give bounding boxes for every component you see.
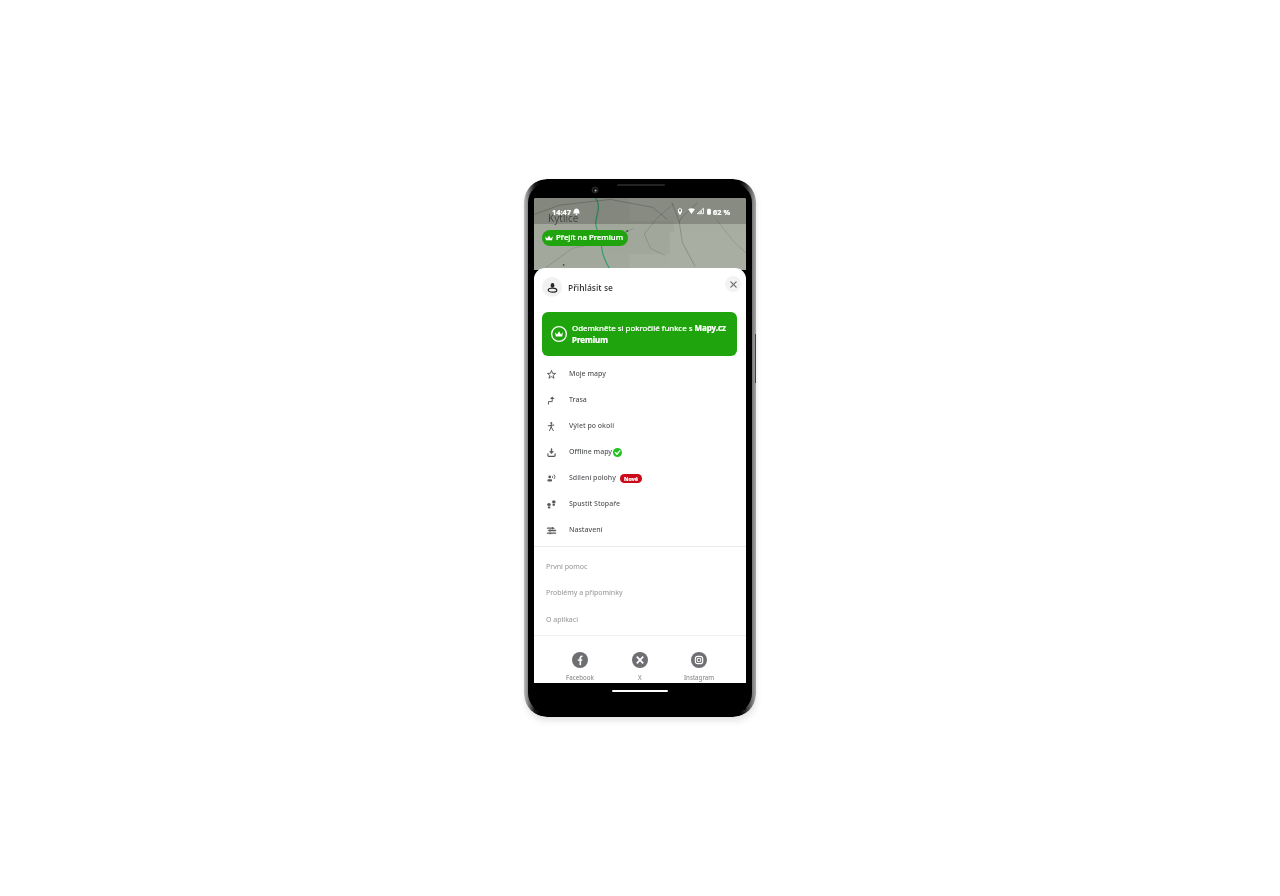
staticText: X <box>638 673 642 681</box>
button[interactable]: Přejít na Premium <box>542 230 628 246</box>
staticText: Přejít na Premium <box>556 232 624 243</box>
staticText: Facebook <box>566 673 594 681</box>
button[interactable]: Výlet po okolí <box>534 413 746 439</box>
staticText: Nové <box>624 475 638 482</box>
button[interactable]: Facebook <box>558 652 602 681</box>
button[interactable]: Sdílení polohy <box>534 465 746 491</box>
staticText: Výlet po okolí <box>569 421 615 431</box>
staticText: Nastavení <box>569 525 603 535</box>
staticText: Spustit Stopaře <box>569 499 621 509</box>
button[interactable]: Spustit Stopaře <box>534 491 746 517</box>
button[interactable]: Offline mapy <box>534 439 746 465</box>
staticText: Sdílení polohy <box>569 473 616 483</box>
staticText: Trasa <box>569 395 587 405</box>
staticText: 62 % <box>713 207 731 217</box>
button[interactable]: Zavřít <box>725 276 741 292</box>
button[interactable]: Odemkněte si pokročilé funkce s Mapy.cz … <box>542 312 737 356</box>
button[interactable]: Moje mapy <box>534 361 746 387</box>
staticText: První pomoc <box>546 562 588 572</box>
button[interactable]: Instagram <box>677 652 721 681</box>
staticText: Instagram <box>684 673 715 681</box>
staticText: Kytlice <box>548 211 579 225</box>
staticText: Odemkněte si pokročilé funkce s Mapy.cz … <box>572 323 737 346</box>
staticText: Moje mapy <box>569 369 606 379</box>
button[interactable]: První pomoc <box>534 554 746 580</box>
staticText: 14:47 <box>552 207 571 217</box>
staticText: O aplikaci <box>546 615 578 625</box>
button[interactable]: Trasa <box>534 387 746 413</box>
button[interactable]: Přihlásit se <box>534 275 746 299</box>
staticText: Problémy a připomínky <box>546 588 623 598</box>
button[interactable]: O aplikaci <box>534 607 746 633</box>
staticText: Přihlásit se <box>568 282 613 293</box>
button[interactable]: Nastavení <box>534 517 746 543</box>
button[interactable]: Problémy a připomínky <box>534 580 746 606</box>
staticText: Offline mapy <box>569 447 613 457</box>
button[interactable]: X <box>618 652 662 681</box>
